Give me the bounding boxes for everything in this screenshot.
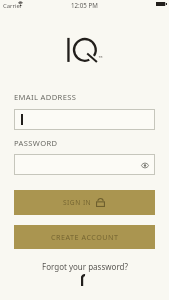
button[interactable]: Forgot your password? — [42, 261, 128, 272]
staticText: Carrier — [3, 2, 23, 10]
staticText: SIGN IN — [63, 198, 92, 207]
button[interactable] — [14, 109, 155, 130]
staticText: EMAIL ADDRESS — [14, 92, 77, 102]
button[interactable]: CREATE ACCOUNT — [14, 225, 155, 249]
button[interactable]: Show password — [14, 154, 155, 175]
staticText: CREATE ACCOUNT — [51, 232, 119, 242]
button[interactable]: SIGN IN — [14, 190, 155, 215]
button[interactable]: Show password — [139, 159, 151, 171]
staticText: PASSWORD — [14, 138, 58, 148]
staticText: 12:05 PM — [71, 1, 98, 9]
